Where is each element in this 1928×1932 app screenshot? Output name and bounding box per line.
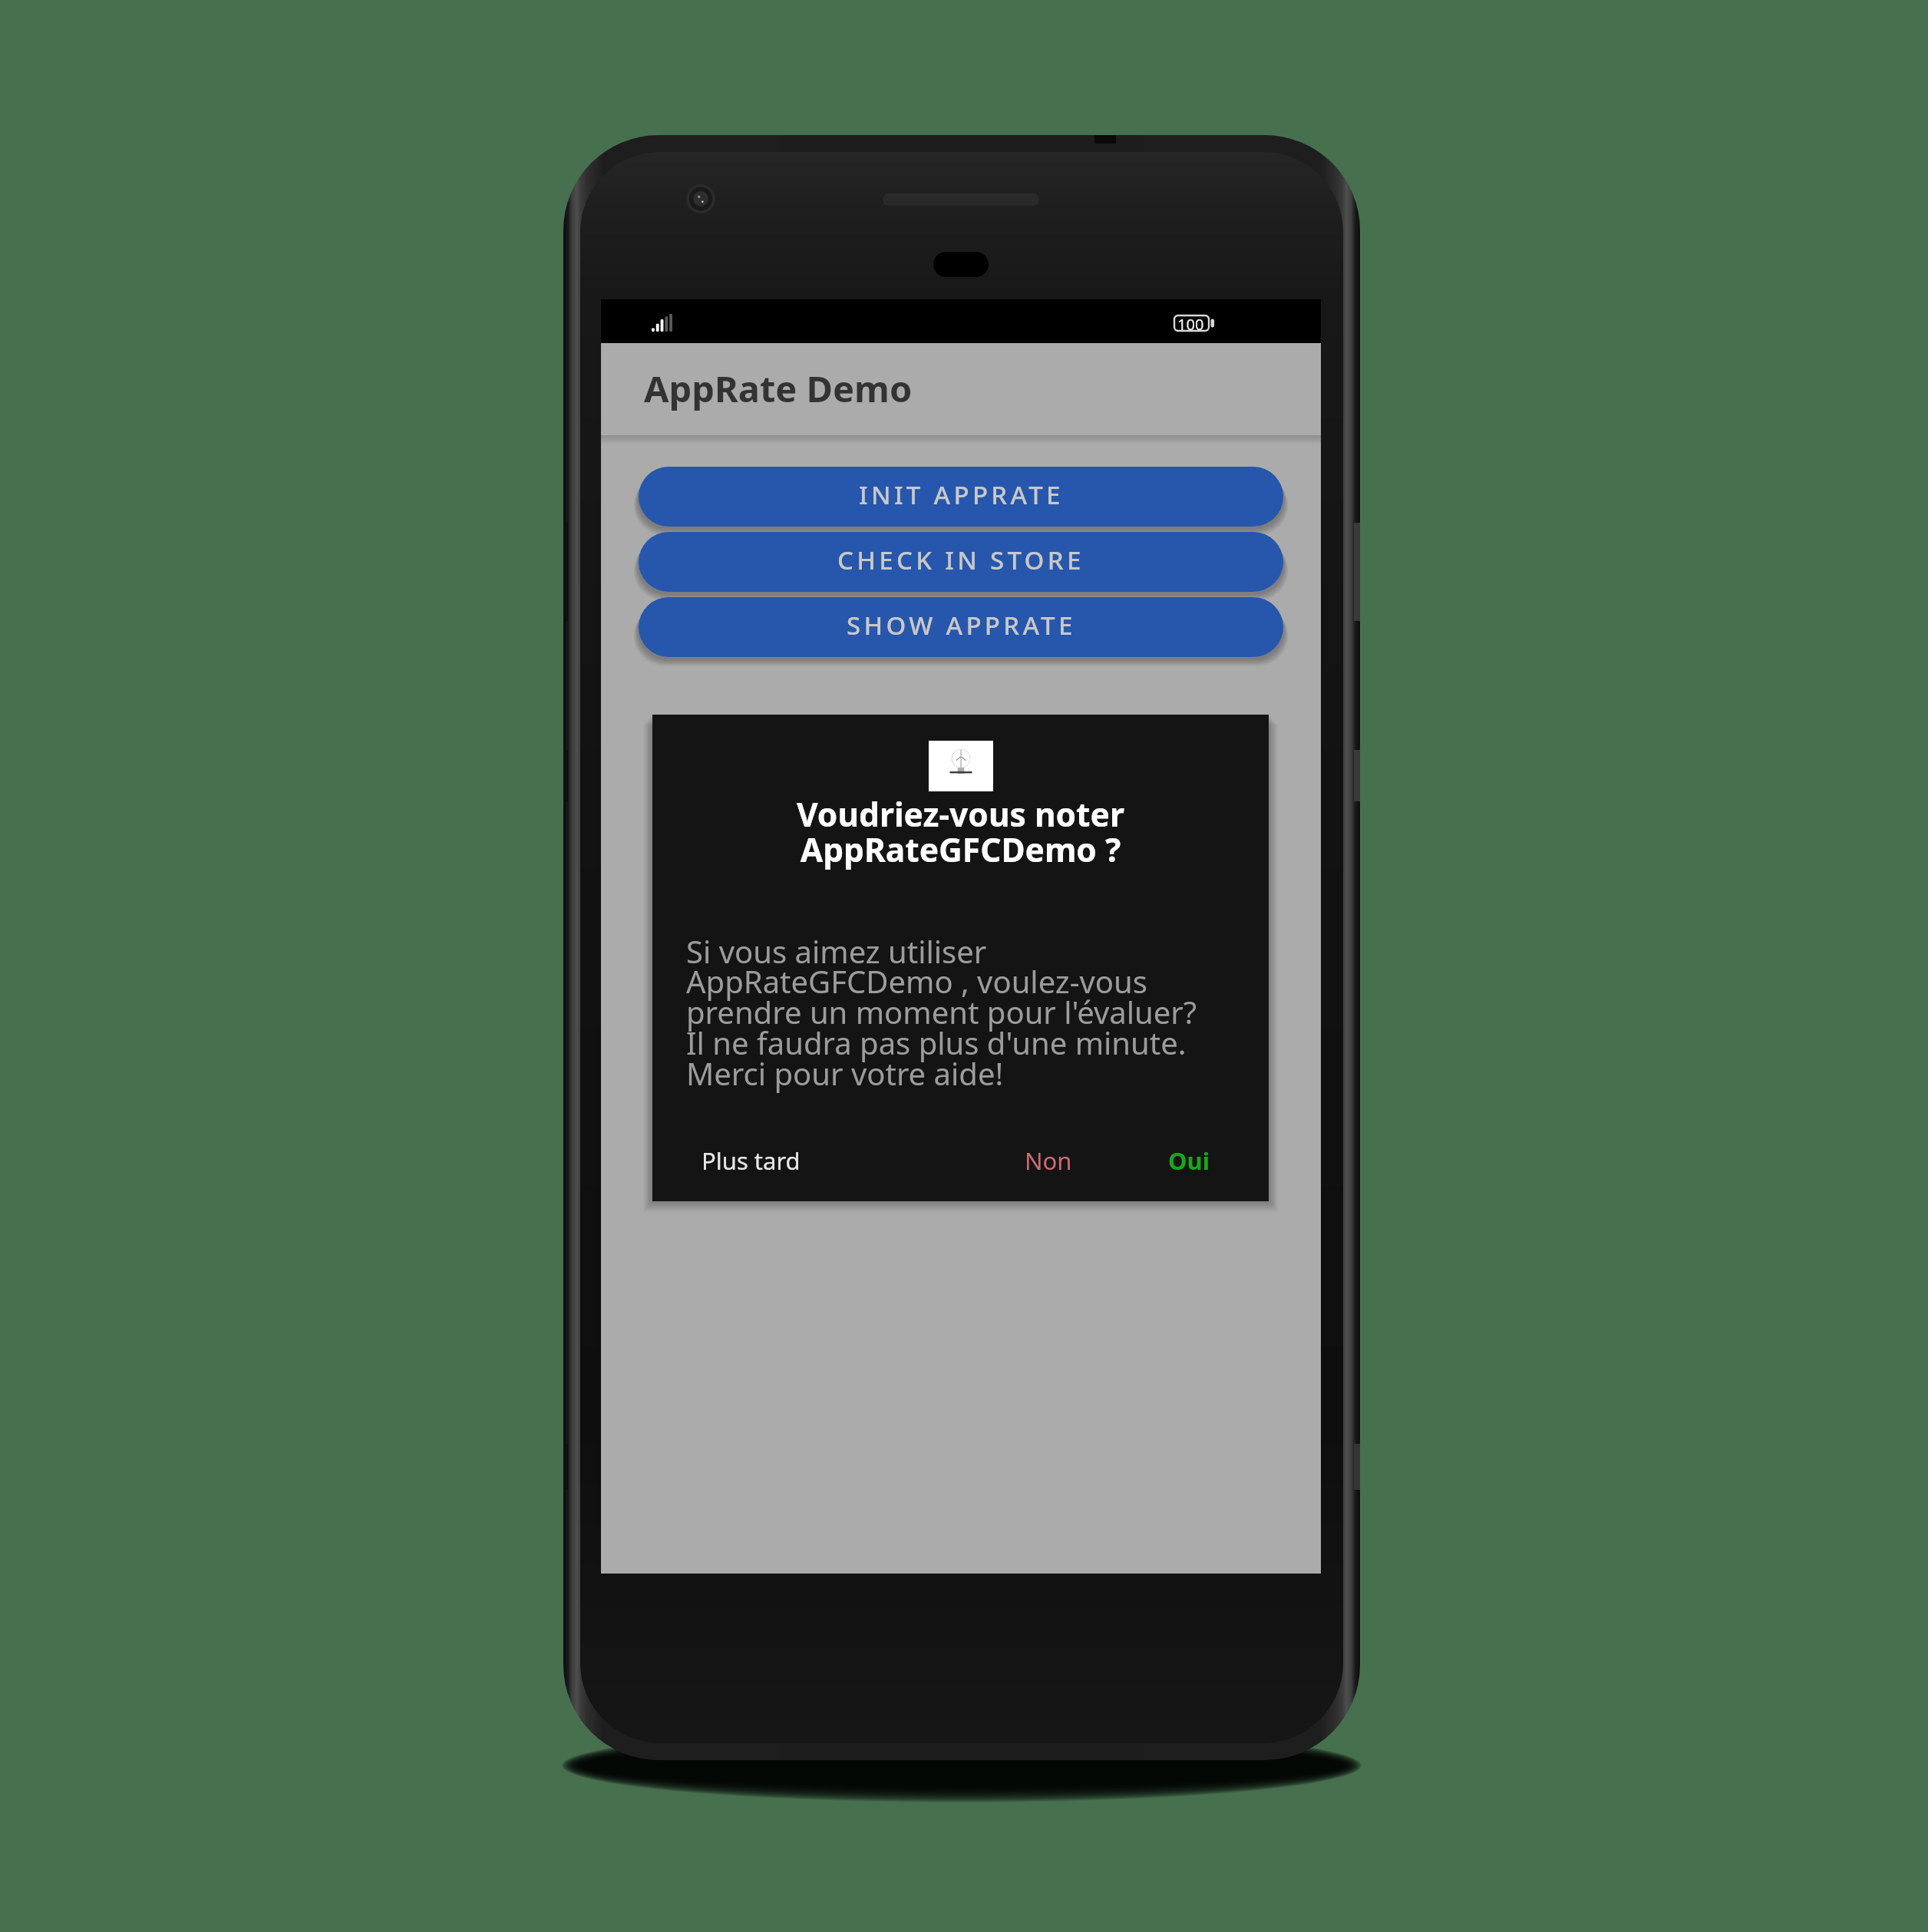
button[interactable]: Non (1009, 1137, 1088, 1184)
other: Battery 100 percent (1174, 315, 1214, 336)
staticText: 100 (1177, 314, 1204, 335)
staticText: CHECK IN STORE (837, 543, 1084, 577)
button[interactable]: CHECK IN STORE (639, 532, 1283, 592)
staticText: Si vous aimez utiliser AppRateGFCDemo , … (686, 930, 1197, 1095)
other: Mobile signal (652, 314, 674, 332)
staticText: Non (1025, 1144, 1072, 1177)
staticText: INIT APPRATE (859, 477, 1064, 512)
button[interactable]: SHOW APPRATE (639, 597, 1283, 657)
staticText: Oui (1168, 1144, 1210, 1177)
button[interactable]: Plus tard (686, 1137, 816, 1184)
staticText: Voudriez-vous noter AppRateGFCDemo ? (652, 792, 1269, 872)
button[interactable]: AppRate Demo (601, 343, 1321, 435)
staticText: SHOW APPRATE (847, 608, 1076, 642)
staticText: Plus tard (702, 1144, 801, 1177)
button[interactable]: Oui (1153, 1137, 1225, 1184)
staticText: AppRate Demo (644, 364, 913, 413)
button[interactable]: INIT APPRATE (639, 467, 1283, 527)
